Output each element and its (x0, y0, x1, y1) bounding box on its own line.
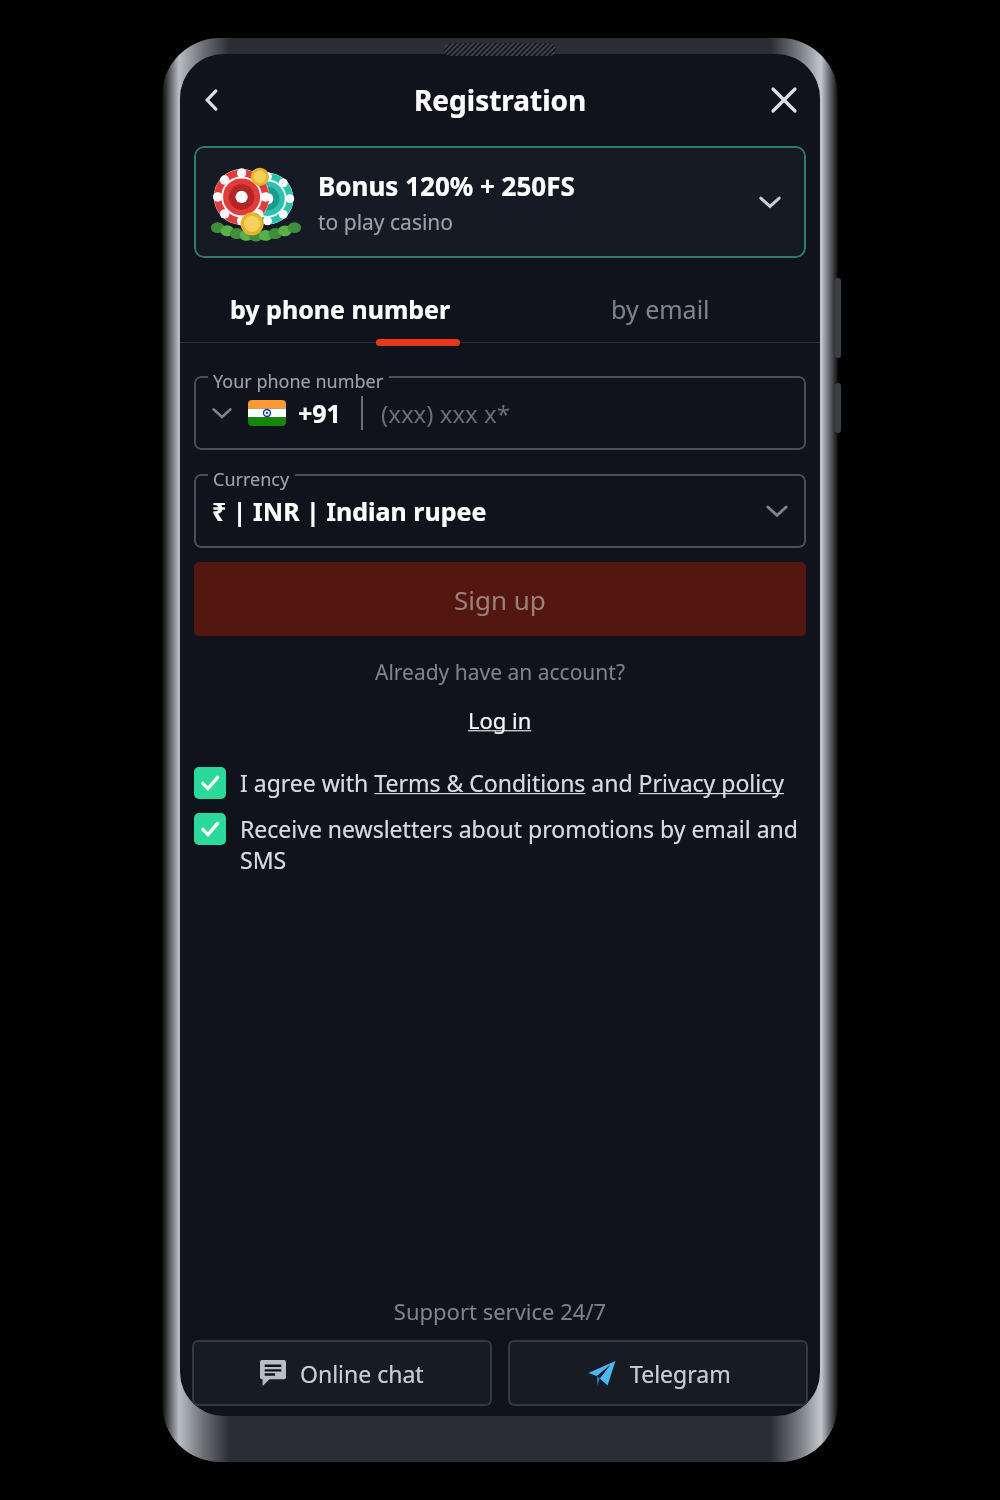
staticText: Online chat (300, 1358, 424, 1389)
button[interactable]: Online chat (192, 1340, 492, 1406)
other: Checked (194, 767, 226, 799)
staticText: +91 (298, 396, 341, 430)
staticText: by email (611, 292, 710, 326)
staticText: Currency (213, 467, 290, 492)
staticText: Already have an account? (180, 658, 820, 687)
staticText: I agree with Terms & Conditions and Priv… (240, 767, 784, 798)
staticText: Registration (414, 81, 587, 119)
button[interactable]: ₹ | INR | Indian rupee (194, 474, 806, 548)
button[interactable]: Bonus 120% + 250FS (194, 146, 806, 258)
staticText: Support service 24/7 (180, 1296, 820, 1326)
staticText: Sign up (454, 582, 546, 617)
button[interactable]: Close (758, 74, 810, 126)
staticText: Your phone number (213, 369, 384, 394)
button[interactable]: by email (500, 280, 820, 338)
staticText: by phone number (230, 292, 451, 326)
button[interactable]: Checked (194, 813, 806, 876)
button[interactable]: +91 (194, 376, 806, 450)
button[interactable]: by phone number (180, 280, 500, 338)
button[interactable]: Log in (462, 703, 538, 737)
button[interactable]: Checked (194, 767, 806, 799)
staticText: Receive newsletters about promotions by … (240, 813, 806, 876)
other: Checked (194, 813, 226, 845)
button[interactable]: Back (186, 74, 238, 126)
staticText: (xxx) xxx x* (381, 397, 510, 430)
button[interactable]: Sign up (194, 562, 806, 636)
staticText: Bonus 120% + 250FS (318, 168, 575, 203)
button[interactable]: Telegram (508, 1340, 808, 1406)
staticText: to play casino (318, 208, 454, 237)
staticText: Telegram (630, 1358, 731, 1389)
staticText: ₹ | INR | Indian rupee (212, 494, 766, 528)
staticText: Log in (468, 705, 532, 735)
